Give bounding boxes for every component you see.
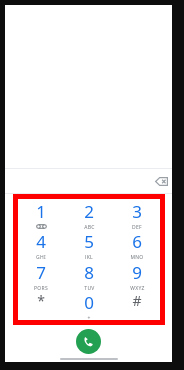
button[interactable]: 1 [20, 200, 62, 229]
button[interactable]: # [116, 291, 158, 320]
staticText: 6 [132, 230, 142, 253]
staticText: 2 [84, 200, 94, 223]
button[interactable]: 9 [116, 261, 158, 290]
button[interactable]: Call [76, 329, 101, 354]
button[interactable]: 6 [116, 230, 158, 259]
staticText: PQRS [34, 285, 48, 290]
staticText: 8 [84, 261, 94, 284]
staticText: # [132, 291, 142, 310]
button[interactable]: 4 [20, 230, 62, 259]
button[interactable]: * [20, 291, 62, 320]
staticText: MNO [130, 254, 144, 259]
button[interactable]: 8 [68, 261, 110, 290]
staticText: * [37, 291, 45, 310]
staticText: 9 [132, 261, 142, 284]
staticText: TUV [84, 285, 95, 290]
staticText: WXYZ [130, 285, 145, 290]
staticText: 0 [84, 291, 94, 314]
staticText: + [87, 315, 91, 320]
staticText: 3 [132, 200, 142, 223]
button[interactable]: 0 [68, 291, 110, 320]
staticText: ABC [84, 224, 95, 229]
staticText: JKL [85, 254, 93, 259]
button[interactable]: Backspace [151, 173, 171, 189]
button[interactable]: 2 [68, 200, 110, 229]
staticText: 1 [36, 200, 46, 223]
button[interactable]: 5 [68, 230, 110, 259]
staticText: GHI [36, 254, 46, 259]
button[interactable]: 3 [116, 200, 158, 229]
staticText: 5 [84, 230, 94, 253]
button[interactable]: 7 [20, 261, 62, 290]
staticText: 4 [36, 230, 46, 253]
staticText: 7 [36, 261, 46, 284]
staticText: DEF [132, 224, 142, 229]
